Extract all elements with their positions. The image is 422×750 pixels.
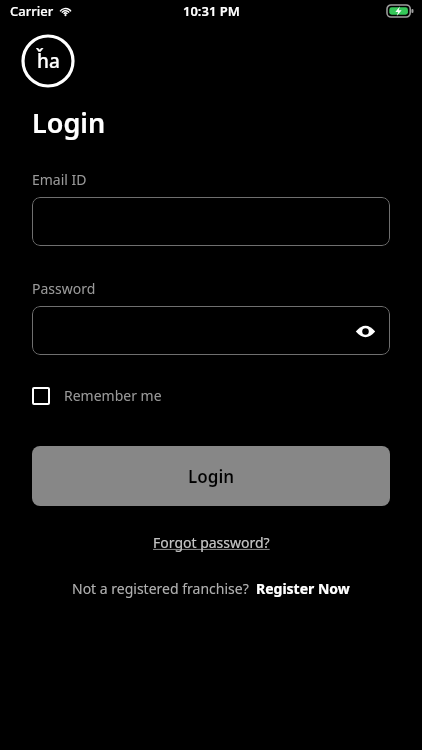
button[interactable]: Login: [32, 446, 390, 506]
staticText: 10:31 PM: [183, 2, 240, 20]
staticText: Remember me: [64, 386, 162, 405]
button[interactable]: Forgot password?: [147, 530, 276, 555]
other: App logo: [21, 34, 75, 88]
button[interactable]: Show password: [352, 318, 378, 344]
staticText: Not a registered franchise?: [72, 579, 249, 598]
staticText: Login: [188, 465, 235, 488]
staticText: Login: [32, 104, 106, 141]
staticText: Email ID: [32, 170, 87, 189]
button[interactable]: Remember me: [32, 386, 162, 405]
button[interactable]: Register Now: [256, 579, 350, 598]
staticText: Carrier: [10, 2, 54, 20]
staticText: ȟa: [37, 48, 60, 74]
button[interactable]: Email ID field: [32, 197, 390, 246]
button[interactable]: Password field: [32, 306, 390, 355]
staticText: Password: [32, 279, 96, 298]
